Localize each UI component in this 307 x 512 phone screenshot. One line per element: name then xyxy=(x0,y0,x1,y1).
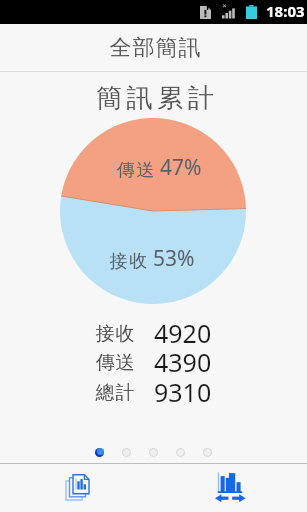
staticText: 簡訊累計 xyxy=(94,82,216,115)
staticText: 傳送 xyxy=(95,351,135,375)
staticText: 47% xyxy=(160,153,202,182)
staticText: 傳送 xyxy=(116,159,155,182)
staticText: 接收 xyxy=(109,250,148,273)
staticText: 18:03 xyxy=(266,1,305,21)
button[interactable]: Statistics xyxy=(153,464,307,512)
button[interactable]: Reports xyxy=(0,464,153,512)
staticText: 4390 xyxy=(154,345,212,379)
staticText: 4920 xyxy=(154,316,212,350)
staticText: 53% xyxy=(153,244,195,273)
staticText: 9310 xyxy=(154,375,212,409)
staticText: 總計 xyxy=(95,381,135,405)
staticText: 接收 xyxy=(95,322,135,346)
staticText: 全部簡訊 xyxy=(109,34,201,62)
